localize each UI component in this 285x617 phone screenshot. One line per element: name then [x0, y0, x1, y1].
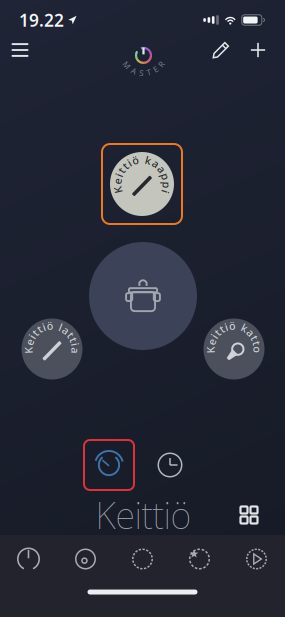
staticText: t	[123, 159, 127, 173]
button[interactable]: K	[203, 318, 264, 379]
staticText: E	[154, 64, 158, 75]
staticText: t	[119, 163, 123, 177]
staticText: a	[63, 323, 69, 337]
staticText: t	[255, 336, 259, 350]
staticText: i	[43, 320, 46, 334]
staticText: i	[164, 185, 167, 199]
staticText: K	[25, 343, 32, 357]
staticText: p	[163, 178, 170, 192]
staticText: Keittiö	[95, 491, 191, 539]
staticText: t	[253, 331, 257, 345]
staticText: e	[114, 174, 120, 188]
button[interactable]: K	[99, 141, 185, 227]
staticText: 19.22	[19, 8, 64, 31]
button[interactable]: Edit	[201, 28, 241, 72]
staticText: i	[73, 337, 76, 351]
button[interactable]: Menu	[0, 28, 42, 72]
button[interactable]: Add	[238, 28, 278, 72]
staticText: i	[225, 320, 228, 334]
staticText: ö	[47, 318, 54, 333]
staticText: e	[27, 335, 33, 349]
staticText: p	[162, 169, 169, 184]
button[interactable]: Grid view	[229, 495, 269, 535]
staticText: A	[131, 65, 136, 76]
button[interactable]: Timer	[82, 438, 136, 492]
button[interactable]: K	[21, 318, 82, 379]
staticText: S	[139, 68, 143, 78]
staticText: a	[153, 156, 159, 171]
staticText: t	[71, 332, 75, 347]
button[interactable]: Effects	[171, 535, 228, 583]
staticText: ö	[229, 318, 236, 333]
button[interactable]: Power	[0, 535, 57, 583]
staticText: e	[209, 335, 215, 349]
staticText: i	[118, 168, 121, 182]
staticText: o	[254, 343, 261, 357]
button[interactable]: Schedule	[148, 443, 192, 487]
staticText: l	[59, 320, 62, 334]
staticText: R	[159, 59, 164, 69]
staticText: M	[123, 60, 130, 70]
button[interactable]: Scenes	[57, 535, 114, 583]
staticText: t	[215, 325, 219, 339]
staticText: K	[207, 343, 214, 357]
staticText: ö	[132, 153, 139, 167]
staticText: T	[147, 67, 151, 78]
button[interactable]: Play	[228, 535, 285, 583]
staticText: a	[159, 162, 165, 176]
staticText: k	[241, 321, 247, 335]
staticText: t	[33, 325, 37, 340]
staticText: t	[220, 322, 224, 336]
staticText: a	[72, 343, 78, 358]
staticText: k	[145, 153, 151, 167]
staticText: i	[128, 156, 131, 170]
button[interactable]: Groups	[114, 535, 171, 583]
staticText: i	[213, 329, 216, 343]
button[interactable]: Master power	[115, 30, 171, 74]
staticText: t	[38, 322, 42, 336]
staticText: t	[69, 328, 73, 342]
staticText: i	[31, 329, 34, 344]
staticText: K	[114, 183, 121, 197]
staticText: a	[248, 325, 254, 340]
